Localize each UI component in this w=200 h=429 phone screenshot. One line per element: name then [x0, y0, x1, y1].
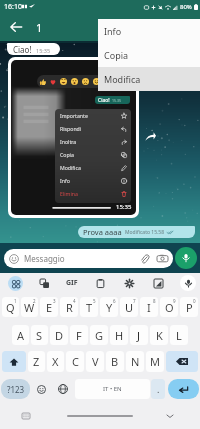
staticText: A: [17, 328, 25, 343]
staticText: 9: [173, 298, 176, 304]
button[interactable]: H: [110, 325, 128, 345]
staticText: G: [95, 328, 104, 343]
button[interactable]: T: [80, 297, 98, 317]
button[interactable]: Back: [5, 16, 27, 38]
button[interactable]: Importante: [55, 109, 131, 122]
staticText: C: [72, 354, 79, 369]
staticText: 8: [153, 298, 156, 304]
button[interactable]: U: [120, 297, 138, 317]
button[interactable]: Enter: [168, 379, 199, 399]
staticText: X: [52, 354, 59, 369]
button[interactable]: GIF: [66, 278, 78, 288]
button[interactable]: Rispondi: [55, 122, 131, 135]
staticText: Elimina: [60, 190, 78, 197]
staticText: GIF: [66, 278, 78, 288]
staticText: Prova aaaa: [83, 227, 122, 237]
staticText: K: [156, 328, 163, 343]
button[interactable]: Stickers: [37, 276, 51, 290]
button[interactable]: Copia: [55, 148, 131, 161]
other: Attach: [140, 254, 150, 264]
button[interactable]: Elimina: [55, 187, 131, 200]
button[interactable]: V: [86, 351, 104, 372]
staticText: Q: [6, 300, 15, 315]
staticText: B: [111, 354, 119, 369]
button[interactable]: N: [126, 351, 144, 372]
button[interactable]: Hide keyboard: [19, 409, 33, 423]
button[interactable]: Prova aaaa: [78, 226, 195, 238]
other: Camera: [157, 253, 168, 264]
button[interactable]: L: [170, 325, 188, 345]
button[interactable]: IT • EN: [75, 379, 150, 399]
button[interactable]: Messaggio: [4, 249, 173, 268]
button[interactable]: Voice input: [180, 275, 196, 291]
button[interactable]: A: [12, 325, 29, 345]
button[interactable]: Resize: [151, 276, 165, 290]
button[interactable]: [37, 75, 103, 88]
button[interactable]: Info: [55, 174, 131, 187]
staticText: Ciao!: [98, 97, 110, 104]
button[interactable]: G: [90, 325, 108, 345]
button[interactable]: Info: [98, 19, 200, 43]
button[interactable]: M: [146, 351, 164, 372]
staticText: J: [137, 328, 141, 343]
staticText: 2: [33, 298, 36, 304]
button[interactable]: Shift: [2, 351, 26, 372]
button[interactable]: F: [70, 325, 88, 345]
staticText: Modificato 15.58: [125, 229, 165, 236]
button[interactable]: Language: [52, 379, 74, 399]
staticText: 1: [14, 298, 17, 304]
staticText: Messaggio: [24, 253, 65, 264]
button[interactable]: Ciao!: [7, 43, 60, 55]
staticText: 15.35: [112, 98, 121, 103]
button[interactable]: X: [47, 351, 64, 372]
staticText: D: [55, 328, 64, 343]
staticText: N: [131, 354, 140, 369]
staticText: O: [165, 300, 174, 315]
button[interactable]: .: [151, 379, 165, 399]
button[interactable]: P: [180, 297, 198, 317]
button[interactable]: Inoltra: [55, 135, 131, 148]
button[interactable]: Modifica: [98, 67, 200, 91]
button[interactable]: I: [140, 297, 158, 317]
staticText: T: [86, 300, 93, 315]
staticText: L: [176, 328, 182, 343]
button[interactable]: Apps: [8, 276, 23, 291]
button[interactable]: D: [50, 325, 68, 345]
button[interactable]: Emoji: [30, 379, 52, 399]
button[interactable]: Y: [100, 297, 118, 317]
button[interactable]: Settings: [122, 276, 136, 290]
staticText: R: [66, 300, 73, 315]
staticText: 6: [113, 298, 116, 304]
staticText: M: [150, 354, 160, 369]
staticText: 80%: [180, 3, 192, 11]
button[interactable]: Reply: [171, 17, 191, 37]
button[interactable]: Q: [2, 297, 19, 317]
button[interactable]: C: [66, 351, 84, 372]
button[interactable]: S: [31, 325, 48, 345]
staticText: Ciao!: [13, 44, 32, 55]
button[interactable]: Voice message: [175, 247, 197, 269]
staticText: Modifica: [104, 73, 141, 85]
staticText: 7: [133, 298, 136, 304]
button[interactable]: ?123: [1, 379, 30, 399]
staticText: I: [147, 300, 151, 315]
staticText: 1: [36, 20, 43, 35]
staticText: Rispondi: [60, 125, 82, 132]
staticText: E: [46, 300, 53, 315]
button[interactable]: O: [160, 297, 178, 317]
button[interactable]: Copia: [98, 43, 200, 67]
button[interactable]: R: [60, 297, 78, 317]
staticText: V: [92, 354, 99, 369]
button[interactable]: W: [21, 297, 38, 317]
button[interactable]: Clipboard: [93, 276, 107, 290]
button[interactable]: J: [130, 325, 148, 345]
button[interactable]: K: [150, 325, 168, 345]
button[interactable]: Ciao!: [8, 57, 139, 218]
button[interactable]: Z: [28, 351, 45, 372]
button[interactable]: Backspace: [166, 351, 198, 372]
button[interactable]: Close keyboard: [163, 409, 177, 423]
staticText: P: [186, 300, 193, 315]
button[interactable]: Modifica: [55, 161, 131, 174]
button[interactable]: B: [106, 351, 124, 372]
button[interactable]: E: [40, 297, 58, 317]
